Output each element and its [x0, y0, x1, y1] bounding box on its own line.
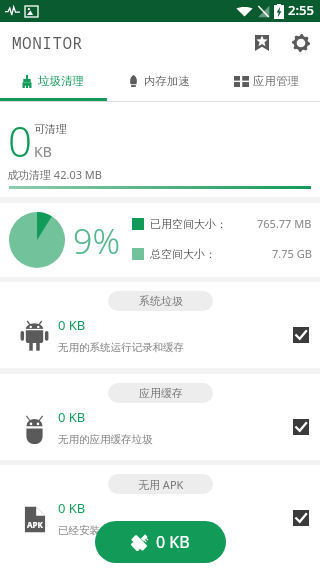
- staticText: 无用的应用缓存垃圾: [58, 433, 153, 446]
- button[interactable]: 应用缓存: [108, 383, 213, 403]
- button[interactable]: 0 KB: [0, 307, 320, 365]
- staticText: 内存加速: [144, 74, 190, 88]
- staticText: 无用 APK: [138, 477, 184, 492]
- button[interactable]: Select: [290, 416, 312, 438]
- staticText: 7.75 GB: [272, 246, 312, 261]
- staticText: 成功清理 42.03 MB: [7, 167, 102, 182]
- staticText: 无用的系统运行记录和缓存: [58, 341, 184, 354]
- staticText: 2:55: [288, 1, 314, 19]
- staticText: 垃圾清理: [38, 74, 84, 88]
- staticText: 可清理: [34, 122, 67, 136]
- button[interactable]: APK: [0, 490, 320, 548]
- staticText: 0 KB: [58, 316, 86, 334]
- staticText: APK: [27, 519, 43, 530]
- staticText: 系统垃圾: [139, 294, 183, 308]
- staticText: 0: [8, 112, 32, 169]
- button[interactable]: Select: [290, 507, 312, 529]
- staticText: 已经安装的安装包: [58, 524, 142, 537]
- staticText: 应用管理: [253, 74, 299, 88]
- staticText: 0 KB: [156, 531, 190, 553]
- button[interactable]: 系统垃圾: [108, 291, 213, 311]
- button[interactable]: 内存加速: [106, 62, 213, 98]
- staticText: 765.77 MB: [257, 216, 312, 231]
- staticText: 0 KB: [58, 408, 86, 426]
- staticText: 0 KB: [58, 499, 86, 517]
- staticText: 应用缓存: [139, 386, 183, 400]
- button[interactable]: 无用 APK: [108, 474, 213, 494]
- button[interactable]: Favorites: [249, 28, 279, 58]
- button[interactable]: Settings: [285, 28, 315, 58]
- staticText: 9%: [73, 218, 121, 264]
- button[interactable]: 应用管理: [213, 62, 320, 98]
- button[interactable]: Select: [290, 324, 312, 346]
- staticText: 已用空间大小：: [150, 217, 227, 231]
- button[interactable]: 0 KB: [0, 399, 320, 457]
- staticText: MONITOR: [12, 32, 83, 54]
- button[interactable]: 0 KB: [95, 521, 226, 563]
- staticText: 总空间大小：: [150, 247, 216, 261]
- staticText: KB: [34, 142, 52, 161]
- button[interactable]: 垃圾清理: [0, 62, 106, 98]
